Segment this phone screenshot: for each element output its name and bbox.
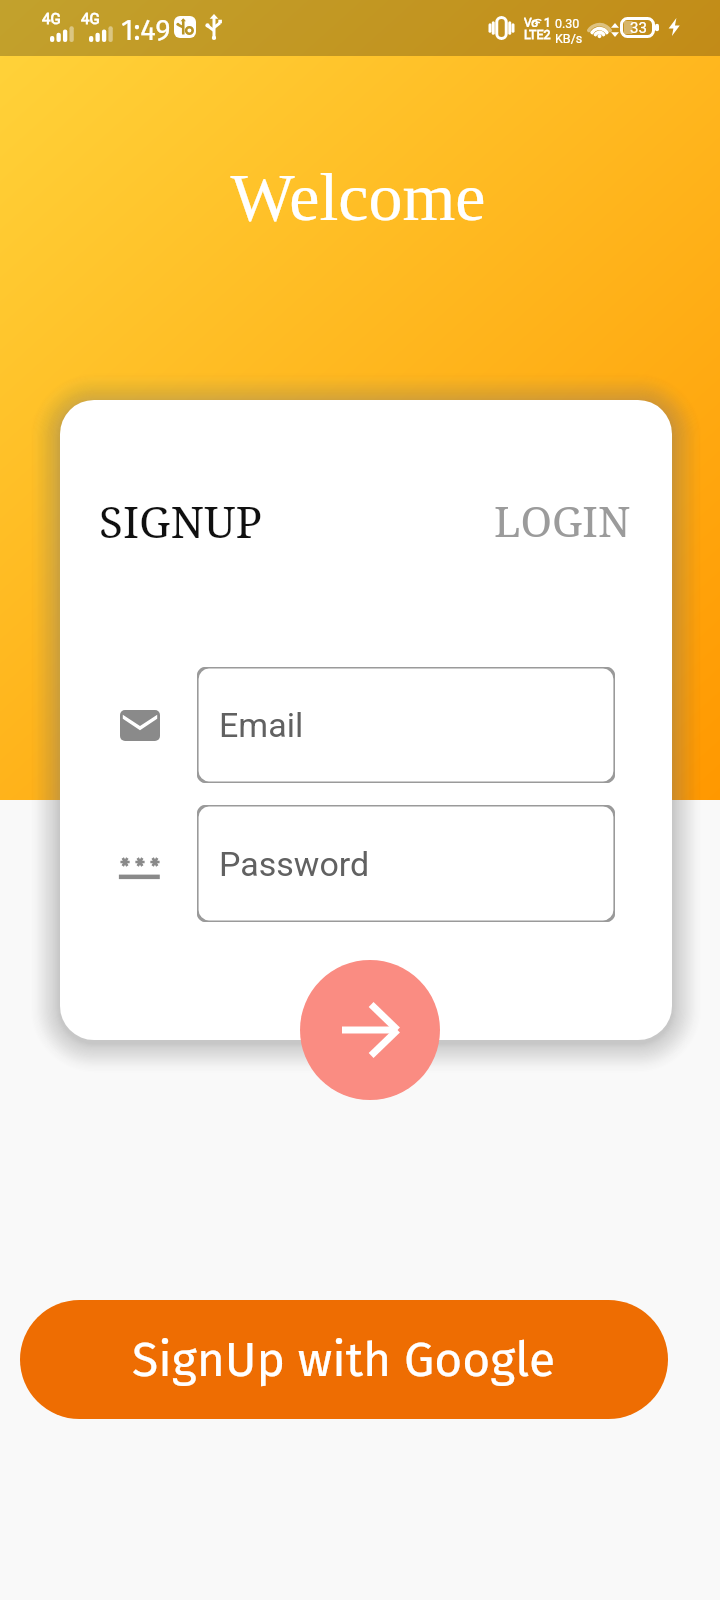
staticText: 1:49: [121, 13, 171, 48]
staticText: Password: [219, 844, 370, 884]
staticText: Welcome: [0, 159, 718, 234]
staticText: LTE2: [524, 27, 551, 42]
button[interactable]: Password: [197, 805, 615, 922]
staticText: Email: [219, 705, 304, 745]
button[interactable]: Email: [197, 667, 615, 783]
staticText: SIGNUP: [99, 491, 263, 551]
button[interactable]: Submit: [300, 960, 440, 1100]
staticText: 0.30: [555, 16, 580, 31]
staticText: 1: [544, 16, 551, 27]
staticText: 4G: [81, 10, 100, 28]
button[interactable]: LOGIN: [494, 492, 631, 550]
staticText: 33: [630, 19, 647, 37]
staticText: Vo: [524, 16, 539, 27]
staticText: 4G: [42, 10, 61, 28]
button[interactable]: SIGNUP: [99, 491, 263, 551]
staticText: LOGIN: [494, 492, 631, 550]
staticText: SignUp with Google: [132, 1331, 556, 1389]
button[interactable]: SignUp with Google: [20, 1300, 668, 1419]
staticText: KB/s: [555, 31, 583, 46]
